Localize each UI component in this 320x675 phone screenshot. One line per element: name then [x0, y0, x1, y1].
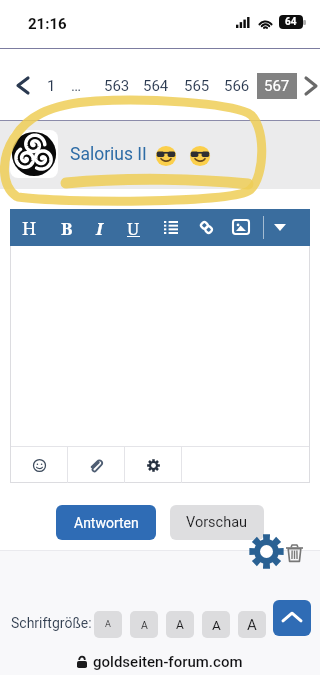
staticText: 566 — [224, 77, 250, 95]
button[interactable]: 565 — [184, 73, 210, 99]
staticText: A — [176, 618, 184, 632]
button[interactable]: Attach — [88, 458, 103, 473]
staticText: 563 — [104, 77, 130, 95]
staticText: A — [141, 619, 148, 631]
button[interactable]: B — [55, 215, 79, 241]
button[interactable]: Image — [233, 220, 249, 234]
button[interactable]: Underline — [123, 217, 143, 239]
button[interactable]: Scroll to top — [273, 600, 311, 636]
button[interactable]: A — [166, 611, 194, 638]
button[interactable]: Emoji — [33, 459, 46, 472]
button[interactable]: Vorschau — [170, 505, 264, 540]
button[interactable]: 1 — [47, 73, 56, 99]
button[interactable]: H — [17, 215, 41, 241]
button[interactable]: More — [274, 224, 286, 231]
button[interactable]: A — [202, 611, 230, 638]
staticText: 64 — [285, 16, 297, 28]
staticText: H — [22, 216, 37, 241]
button[interactable]: Avatar — [10, 130, 58, 178]
button[interactable]: 567 — [257, 73, 297, 99]
button[interactable]: Antworten — [56, 505, 156, 540]
staticText: A — [105, 619, 111, 630]
button[interactable]: 564 — [143, 73, 169, 99]
staticText: Schriftgröße: — [11, 615, 92, 631]
button[interactable]: 563 — [104, 73, 130, 99]
staticText: 1 — [47, 77, 56, 95]
staticText: goldseiten-forum.com — [93, 653, 243, 671]
staticText: … — [71, 77, 82, 95]
staticText: B — [61, 217, 73, 240]
staticText: U — [127, 217, 140, 239]
button[interactable]: A — [130, 611, 158, 638]
button[interactable]: List — [164, 221, 178, 234]
button[interactable]: Settings — [249, 534, 284, 569]
staticText: Vorschau — [186, 514, 248, 531]
button[interactable]: Options — [147, 459, 160, 472]
button[interactable]: Back — [12, 73, 34, 97]
button[interactable]: … — [71, 73, 82, 99]
button[interactable]: A — [238, 611, 266, 638]
button[interactable]: Next page — [306, 78, 316, 94]
staticText: 567 — [264, 77, 290, 95]
staticText: I — [96, 217, 103, 240]
button[interactable]: 566 — [224, 73, 250, 99]
staticText: 564 — [143, 77, 169, 95]
staticText: A — [247, 616, 257, 634]
button[interactable]: I — [87, 215, 111, 241]
staticText: 21:16 — [28, 15, 67, 33]
button[interactable]: Salorius II — [70, 144, 147, 165]
staticText: A — [212, 617, 221, 633]
button[interactable]: Link — [199, 220, 214, 235]
button[interactable]: A — [94, 611, 122, 638]
button[interactable]: Delete — [286, 543, 303, 562]
staticText: 565 — [184, 77, 210, 95]
staticText: Antworten — [74, 515, 139, 531]
